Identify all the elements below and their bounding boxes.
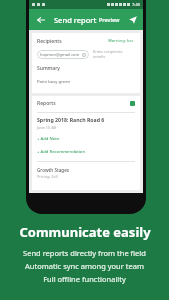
staticText: Send reports directly from the field <box>23 248 146 258</box>
staticText: Pricing: 2x3 <box>37 174 58 179</box>
staticText: Send report <box>54 15 97 25</box>
staticText: Summary <box>37 65 60 72</box>
staticText: Automatic sync among your team <box>25 261 144 271</box>
button[interactable]: Report status <box>130 101 135 106</box>
staticText: hopmon@gmail.com <box>40 52 80 57</box>
staticText: Reports <box>37 100 56 107</box>
button[interactable]: + Add Note <box>37 135 60 143</box>
staticText: + Add Note <box>37 136 60 142</box>
staticText: Full offline functionality <box>43 274 126 284</box>
staticText: Preview <box>99 16 120 23</box>
button[interactable]: + Add Recommendation <box>37 148 86 156</box>
staticText: Enter recipients emails <box>93 49 135 59</box>
button[interactable]: Send <box>127 13 138 26</box>
button[interactable]: Warning: bcc <box>107 37 135 45</box>
button[interactable]: hopmon@gmail.com <box>37 50 89 59</box>
button[interactable]: Preview <box>97 15 122 24</box>
staticText: Recipients <box>37 38 62 45</box>
staticText: Paint busy green <box>37 79 71 85</box>
staticText: Warning: bcc <box>108 38 134 44</box>
staticText: June 15 AB <box>37 125 57 130</box>
staticText: Communicate easily <box>19 223 151 241</box>
button[interactable]: Growth Stages <box>37 165 135 181</box>
staticText: Growth Stages <box>37 167 70 173</box>
staticText: Spring 2018: Ranch Road 6 <box>37 116 105 123</box>
staticText: + Add Recommendation <box>37 149 86 155</box>
button[interactable]: Back <box>34 13 48 27</box>
staticText: 7:45 <box>132 2 140 7</box>
